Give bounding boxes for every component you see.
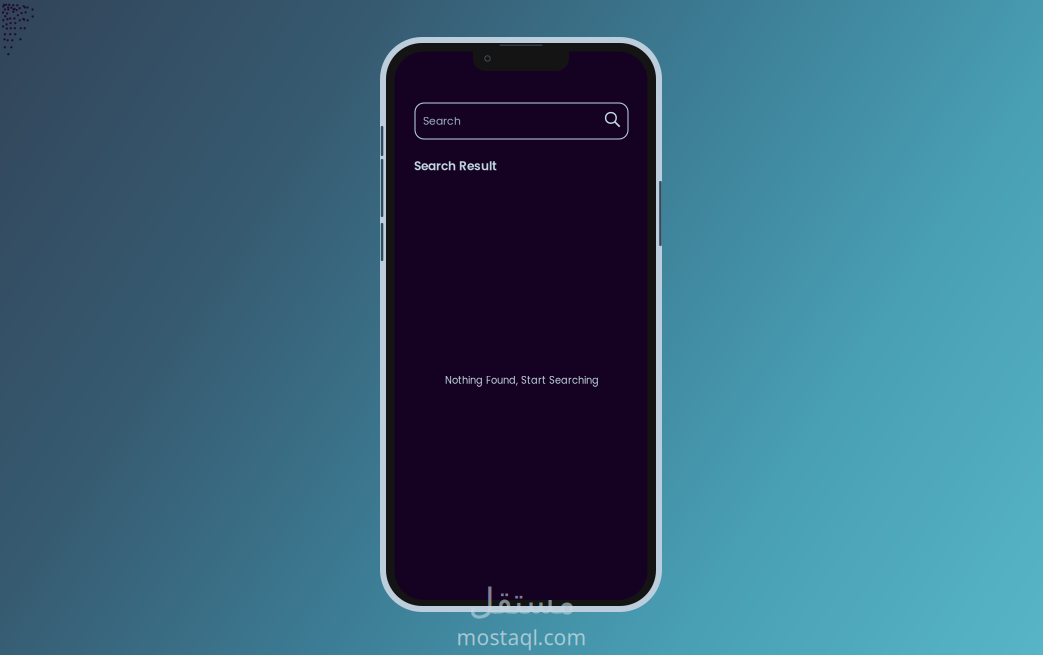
staticText: Search Result xyxy=(414,157,497,174)
button[interactable]: Search xyxy=(415,103,628,139)
staticText: مستقل xyxy=(468,580,575,622)
staticText: Nothing Found, Start Searching xyxy=(445,373,599,387)
staticText: Search xyxy=(423,113,461,128)
button[interactable]: Search xyxy=(600,107,626,133)
staticText: mostaql.com xyxy=(456,623,586,651)
